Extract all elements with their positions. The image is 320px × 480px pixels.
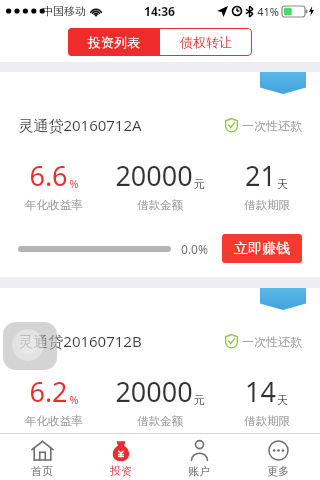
staticText: 元 (194, 177, 205, 191)
staticText: 立即赚钱 (234, 240, 290, 258)
staticText: 账户 (188, 464, 210, 478)
staticText: 借款金额 (137, 414, 183, 428)
staticText: 20000 (115, 373, 193, 410)
staticText: 0.0% (181, 241, 208, 257)
staticText: 投资 (110, 464, 132, 478)
staticText: 天 (277, 177, 288, 191)
staticText: 债权转让 (180, 34, 232, 50)
staticText: 天 (277, 393, 288, 407)
staticText: 借款期限 (244, 198, 290, 212)
staticText: 一次性还款 (242, 334, 302, 349)
staticText: 20000 (115, 157, 193, 194)
staticText: 借款期限 (244, 414, 290, 428)
other: 投资 (110, 440, 132, 461)
button[interactable]: 债权转让 (160, 28, 252, 56)
staticText: 6.2 (29, 373, 68, 410)
staticText: 元 (194, 393, 205, 407)
staticText: 21 (245, 157, 276, 194)
staticText: 灵通贷20160712B (18, 331, 142, 351)
staticText: 借款金额 (137, 198, 183, 212)
staticText: 年化收益率 (25, 414, 83, 428)
staticText: 更多 (267, 464, 289, 478)
other: 更多 (268, 440, 289, 461)
staticText: 首页 (31, 464, 53, 478)
button[interactable]: 投资列表 (68, 28, 160, 56)
staticText: 投资列表 (88, 34, 140, 50)
staticText: 41% (257, 4, 279, 19)
staticText: 年化收益率 (25, 198, 83, 212)
staticText: % (69, 176, 79, 191)
staticText: 一次性还款 (242, 118, 302, 133)
staticText: 14 (245, 373, 276, 410)
button[interactable]: 账户 (163, 434, 235, 480)
button[interactable]: 更多 (242, 434, 314, 480)
button[interactable]: 立即赚钱 (222, 234, 302, 263)
staticText: 6.6 (29, 157, 68, 194)
other: 首页 (31, 440, 54, 461)
button[interactable]: 首页 (6, 434, 78, 480)
button[interactable]: 投资 (85, 434, 157, 480)
staticText: 14:36 (144, 3, 175, 19)
staticText: 中国移动 (42, 4, 86, 18)
staticText: 灵通贷20160712A (18, 115, 142, 135)
other: 账户 (189, 440, 210, 461)
staticText: % (69, 392, 79, 407)
